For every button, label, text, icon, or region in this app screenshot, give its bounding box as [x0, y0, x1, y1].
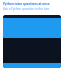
- staticText: Python tutor questions at once: [3, 2, 50, 6]
- staticText: Ask a Python question in the box: [3, 7, 50, 11]
